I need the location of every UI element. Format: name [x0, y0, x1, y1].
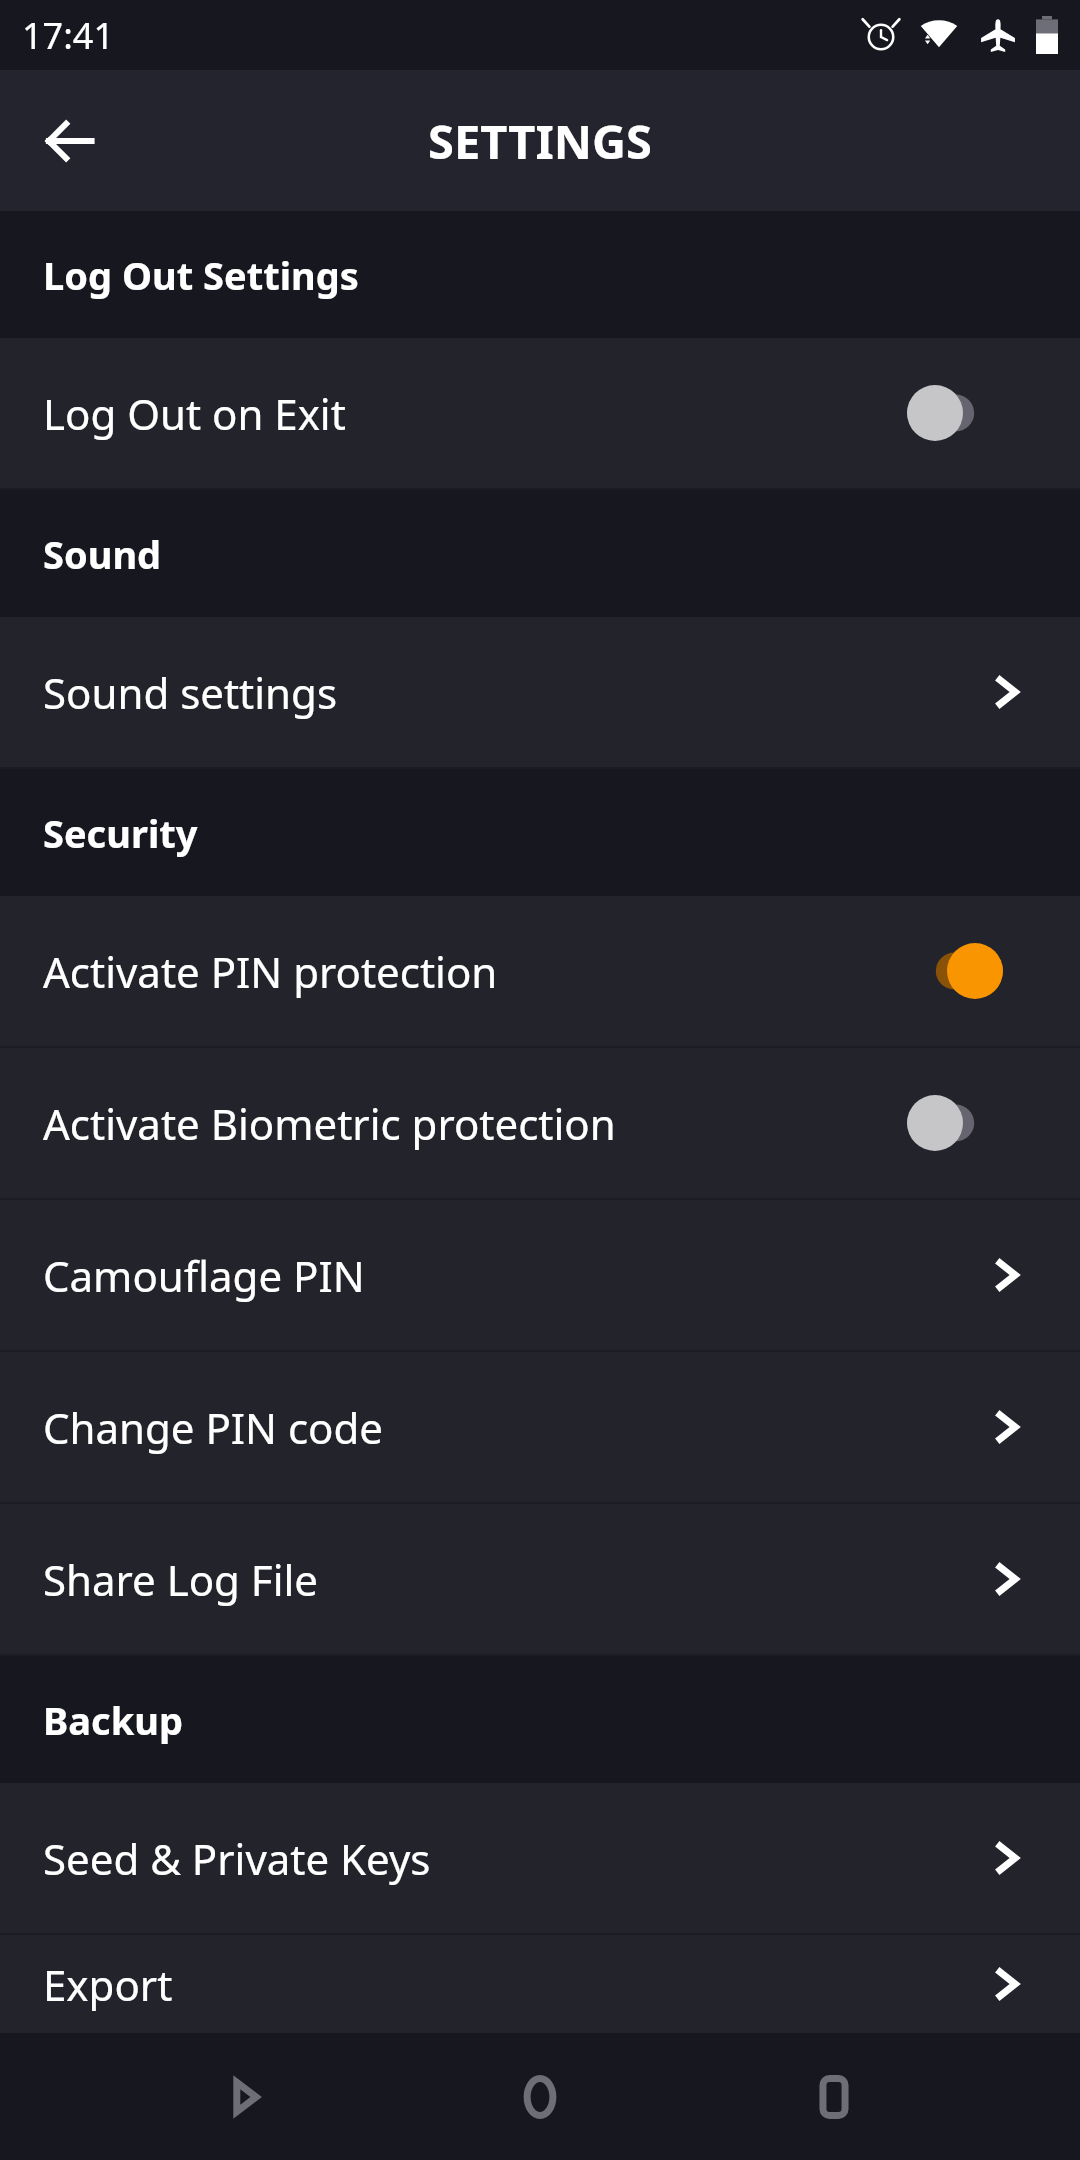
button[interactable]: Share Log File	[0, 1504, 1080, 1654]
button[interactable]: Export	[0, 1935, 1080, 2033]
button[interactable]: Back	[198, 2049, 294, 2145]
staticText: Export	[43, 1956, 988, 2013]
staticText: SETTINGS	[428, 109, 652, 173]
button[interactable]: Activate PIN protection	[0, 896, 1080, 1046]
staticText: Camouflage PIN	[43, 1247, 988, 1304]
button[interactable]: Home	[492, 2049, 588, 2145]
staticText: Security	[43, 807, 198, 859]
button[interactable]: Log Out on Exit	[0, 338, 1080, 488]
button[interactable]: Camouflage PIN	[0, 1200, 1080, 1350]
staticText: Change PIN code	[43, 1399, 988, 1456]
staticText: Seed & Private Keys	[43, 1830, 988, 1887]
button[interactable]: Recent apps	[786, 2049, 882, 2145]
button[interactable]: Activate Biometric protection	[0, 1048, 1080, 1198]
button[interactable]: Back	[34, 105, 106, 177]
staticText: Activate Biometric protection	[43, 1095, 907, 1152]
staticText: Backup	[43, 1694, 183, 1746]
staticText: Sound	[43, 528, 162, 580]
button[interactable]: Sound settings	[0, 617, 1080, 767]
staticText: 17:41	[22, 11, 115, 60]
staticText: Share Log File	[43, 1551, 988, 1608]
staticText: Log Out on Exit	[43, 385, 907, 442]
staticText: Log Out Settings	[43, 249, 359, 301]
button[interactable]: Seed & Private Keys	[0, 1783, 1080, 1933]
staticText: Activate PIN protection	[43, 943, 907, 1000]
staticText: Sound settings	[43, 664, 988, 721]
button[interactable]: Change PIN code	[0, 1352, 1080, 1502]
